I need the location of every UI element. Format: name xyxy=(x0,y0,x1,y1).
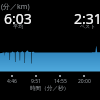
staticText: ベスト xyxy=(80,23,96,29)
staticText: 14:55 xyxy=(54,78,67,85)
staticText: 4:46 xyxy=(7,78,17,85)
staticText: 20:00 xyxy=(78,78,91,85)
staticText: 平均 xyxy=(13,23,23,29)
staticText: 2:31 xyxy=(74,9,100,28)
staticText: 時間（分／秒） xyxy=(30,85,70,92)
staticText: (分／km) xyxy=(1,2,30,12)
staticText: 6:03 xyxy=(4,9,32,28)
staticText: 9:51 xyxy=(31,78,41,85)
